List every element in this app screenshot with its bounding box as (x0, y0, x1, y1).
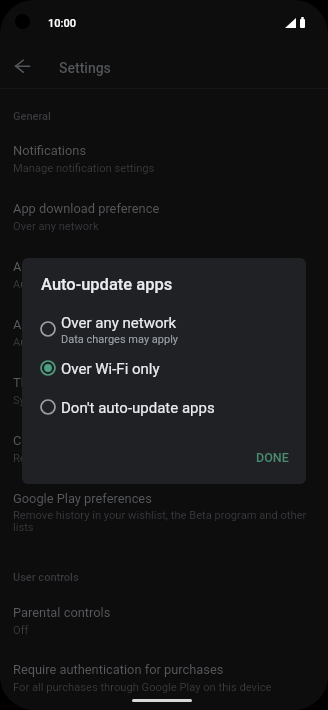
button[interactable] (22, 310, 306, 350)
button[interactable]: DONE (241, 441, 303, 475)
staticText: DONE (256, 450, 289, 466)
button[interactable] (0, 308, 328, 360)
staticText: Auto-play videos (13, 316, 108, 332)
staticText: Google Play preferences (13, 490, 152, 506)
staticText: Theme (13, 374, 53, 390)
staticText: Auto-update apps (41, 274, 173, 295)
button[interactable] (0, 424, 328, 476)
staticText: Over Wi-Fi only (61, 359, 160, 378)
button[interactable] (22, 388, 306, 426)
staticText: For all purchases through Google Play on… (13, 680, 272, 694)
staticText: App download preference (13, 200, 160, 216)
button[interactable] (0, 134, 328, 186)
button[interactable]: Back (0, 44, 45, 89)
staticText: Parental controls (13, 604, 111, 620)
staticText: Remove history in your wishlist, the Bet… (13, 509, 311, 534)
button[interactable] (0, 482, 328, 540)
staticText: Auto-update apps (13, 258, 115, 274)
staticText: User controls (13, 570, 79, 584)
staticText: Remove all your searches (13, 451, 140, 465)
button[interactable] (0, 192, 328, 244)
staticText: 10:00 (48, 16, 76, 30)
staticText: Manage notification settings (13, 161, 155, 175)
button[interactable] (0, 250, 328, 302)
button[interactable] (0, 653, 328, 705)
staticText: System default (13, 393, 88, 407)
staticText: Data charges may apply (61, 332, 179, 346)
button[interactable] (22, 350, 306, 388)
staticText: General (13, 109, 51, 123)
button[interactable] (0, 366, 328, 418)
staticText: Settings (59, 59, 111, 77)
staticText: Over any network (13, 219, 99, 233)
staticText: Notifications (13, 142, 87, 158)
button[interactable] (0, 596, 328, 648)
staticText: Require authentication for purchases (13, 661, 224, 677)
staticText: Auto-update apps over Wi-Fi only (13, 277, 176, 291)
staticText: Over any network (61, 313, 177, 332)
staticText: Off (13, 623, 29, 637)
staticText: Clear local search history (13, 432, 157, 448)
staticText: Don't auto-update apps (61, 398, 215, 417)
staticText: Auto-play videos over Wi-Fi only (13, 335, 170, 349)
